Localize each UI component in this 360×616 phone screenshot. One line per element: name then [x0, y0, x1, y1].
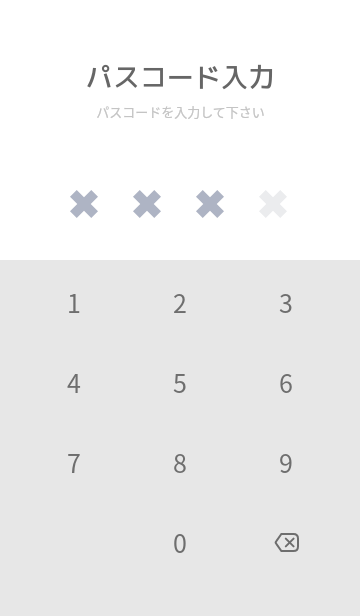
- staticText: パスコードを入力して下さい: [96, 102, 265, 121]
- button[interactable]: 8: [144, 426, 216, 498]
- button[interactable]: 4: [38, 346, 110, 418]
- staticText: 6: [279, 364, 293, 400]
- button[interactable]: 6: [250, 346, 322, 418]
- button[interactable]: 0: [144, 506, 216, 578]
- button[interactable]: 3: [250, 266, 322, 338]
- button[interactable]: 2: [144, 266, 216, 338]
- staticText: パスコード入力: [86, 58, 275, 96]
- staticText: 3: [279, 284, 293, 320]
- staticText: 8: [173, 444, 187, 480]
- button[interactable]: 7: [38, 426, 110, 498]
- staticText: 4: [67, 364, 81, 400]
- staticText: 5: [173, 364, 187, 400]
- staticText: 0: [173, 524, 187, 560]
- button[interactable]: 5: [144, 346, 216, 418]
- button[interactable]: 9: [250, 426, 322, 498]
- staticText: 7: [67, 444, 81, 480]
- button[interactable]: Delete: [250, 506, 322, 578]
- staticText: 2: [173, 284, 187, 320]
- staticText: 9: [279, 444, 293, 480]
- button[interactable]: 1: [38, 266, 110, 338]
- staticText: 1: [67, 284, 81, 320]
